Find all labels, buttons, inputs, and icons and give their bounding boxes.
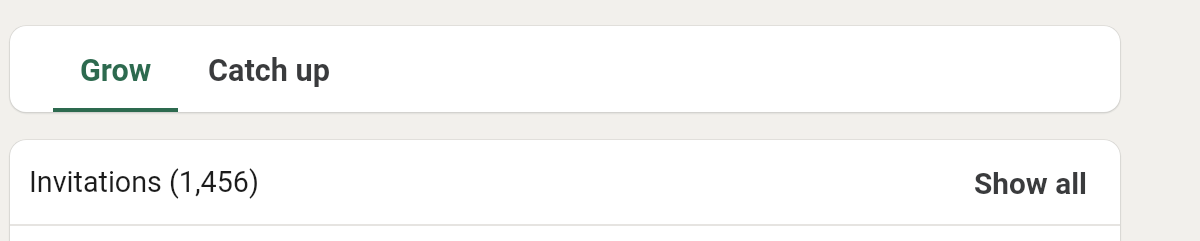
button[interactable]: Catch up xyxy=(178,26,359,112)
staticText: Catch up xyxy=(208,53,330,89)
button[interactable]: Grow xyxy=(53,26,178,112)
staticText: Grow xyxy=(80,53,152,89)
staticText: Show all xyxy=(974,166,1087,201)
staticText: Invitations (1,456) xyxy=(29,165,259,199)
button[interactable]: Show all xyxy=(972,159,1089,206)
